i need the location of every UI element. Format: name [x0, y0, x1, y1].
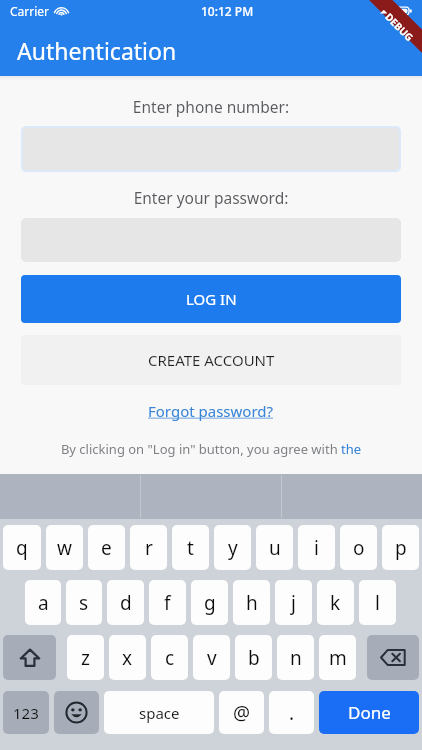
staticText: m: [329, 645, 347, 671]
button[interactable]: .: [269, 691, 314, 734]
staticText: n: [290, 645, 302, 671]
staticText: Done: [348, 701, 391, 724]
button[interactable]: LOG IN: [21, 275, 401, 323]
staticText: By clicking on "Log in" button, you agre…: [21, 440, 401, 458]
button[interactable]: Emoji: [54, 691, 99, 734]
staticText: i: [314, 535, 319, 561]
staticText: q: [16, 535, 28, 561]
staticText: z: [81, 645, 90, 671]
button[interactable]: v: [193, 635, 230, 680]
button[interactable]: d: [107, 580, 144, 625]
staticText: p: [395, 535, 407, 561]
button[interactable]: n: [277, 635, 314, 680]
button[interactable]: m: [319, 635, 356, 680]
staticText: LOG IN: [186, 289, 237, 309]
staticText: @: [233, 700, 251, 726]
button[interactable]: p: [382, 525, 419, 570]
staticText: e: [101, 535, 112, 561]
button[interactable]: Forgot password?: [148, 401, 274, 421]
staticText: Enter your password:: [21, 187, 401, 208]
button[interactable]: w: [46, 525, 83, 570]
button[interactable]: Shift: [3, 635, 56, 680]
staticText: ◤: [380, 8, 389, 17]
button[interactable]: c: [151, 635, 188, 680]
staticText: space: [139, 703, 180, 723]
button[interactable]: q: [3, 525, 41, 570]
staticText: v: [207, 645, 217, 671]
button[interactable]: o: [340, 525, 377, 570]
button[interactable]: k: [317, 580, 354, 625]
staticText: b: [248, 645, 260, 671]
staticText: r: [145, 535, 153, 561]
button[interactable]: t: [172, 525, 209, 570]
button[interactable]: 123: [3, 691, 49, 734]
staticText: h: [246, 590, 258, 616]
staticText: s: [79, 590, 89, 616]
staticText: l: [375, 590, 380, 616]
button[interactable]: h: [233, 580, 270, 625]
staticText: j: [291, 590, 296, 616]
button[interactable]: g: [191, 580, 228, 625]
button[interactable]: z: [67, 635, 104, 680]
staticText: DEBUG: [382, 10, 417, 44]
staticText: Carrier: [10, 3, 50, 19]
staticText: f: [164, 590, 171, 616]
button[interactable]: i: [298, 525, 335, 570]
staticText: 123: [13, 703, 39, 723]
button[interactable]: u: [256, 525, 293, 570]
button[interactable]: e: [88, 525, 125, 570]
button[interactable]: CREATE ACCOUNT: [21, 335, 401, 385]
button[interactable]: Backspace: [367, 635, 419, 680]
button[interactable]: s: [66, 580, 102, 625]
staticText: g: [204, 590, 216, 616]
staticText: Authentication: [17, 35, 177, 66]
staticText: .: [289, 700, 295, 726]
button[interactable]: l: [359, 580, 396, 625]
staticText: d: [120, 590, 132, 616]
button[interactable]: space: [104, 691, 214, 734]
staticText: w: [57, 535, 72, 561]
staticText: CREATE ACCOUNT: [148, 350, 275, 370]
button[interactable]: b: [235, 635, 272, 680]
button[interactable]: y: [214, 525, 251, 570]
button[interactable]: j: [275, 580, 312, 625]
button[interactable]: a: [25, 580, 61, 625]
button[interactable]: Done: [319, 691, 419, 734]
button[interactable]: r: [130, 525, 167, 570]
button[interactable]: f: [149, 580, 186, 625]
staticText: 10:12 PM: [201, 3, 254, 19]
staticText: t: [187, 535, 194, 561]
button[interactable]: @: [219, 691, 264, 734]
staticText: o: [353, 535, 365, 561]
button[interactable]: x: [109, 635, 146, 680]
staticText: Enter phone number:: [21, 96, 401, 117]
staticText: c: [165, 645, 175, 671]
staticText: x: [122, 645, 133, 671]
staticText: u: [269, 535, 281, 561]
staticText: k: [330, 590, 341, 616]
staticText: y: [228, 535, 238, 561]
staticText: a: [38, 590, 49, 616]
